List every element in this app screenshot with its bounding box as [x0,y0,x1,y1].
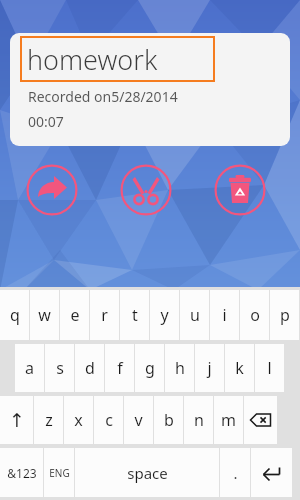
staticText: x [74,409,83,431]
button[interactable]: u [180,290,209,340]
button[interactable]: homework [20,36,215,82]
staticText: v [134,409,143,431]
button[interactable]: k [225,344,254,392]
staticText: d [85,357,95,379]
staticText: ENG [49,466,70,480]
staticText: b [164,409,174,431]
button[interactable]: Symbols [0,448,43,497]
button[interactable]: Shift [0,396,33,444]
button[interactable]: l [255,344,284,392]
staticText: t [132,304,138,326]
staticText: c [105,409,113,431]
staticText: f [117,357,123,379]
button[interactable]: homework [10,33,290,146]
button[interactable]: t [120,290,149,340]
staticText: y [160,304,169,326]
button[interactable]: r [90,290,119,340]
button[interactable]: x [64,396,93,444]
staticText: r [101,304,108,326]
button[interactable]: Language [44,448,74,497]
button[interactable]: o [240,290,269,340]
staticText: o [250,304,260,326]
staticText: w [38,304,51,326]
button[interactable]: Enter [251,448,292,497]
staticText: g [145,357,155,379]
staticText: e [70,304,80,326]
button[interactable]: Delete [214,164,266,216]
button[interactable]: e [60,290,89,340]
button[interactable]: p [270,290,299,340]
staticText: &123 [7,465,37,481]
button[interactable]: g [135,344,164,392]
button[interactable]: c [94,396,123,444]
button[interactable]: f [105,344,134,392]
staticText: u [190,304,200,326]
button[interactable]: Share [26,164,78,216]
staticText: a [25,357,34,379]
button[interactable]: b [154,396,183,444]
staticText: i [222,304,227,326]
button[interactable]: j [195,344,224,392]
staticText: space [127,463,168,483]
staticText: z [45,409,53,431]
staticText: s [56,357,64,379]
button[interactable]: w [30,290,59,340]
button[interactable]: v [124,396,153,444]
button[interactable]: s [45,344,74,392]
staticText: ↑ [9,409,25,431]
button[interactable]: Trim [120,164,172,216]
staticText: homework [27,41,158,78]
button[interactable]: a [15,344,44,392]
staticText: p [280,304,290,326]
button[interactable]: h [165,344,194,392]
button[interactable]: d [75,344,104,392]
button[interactable]: Backspace [244,396,277,444]
staticText: . [233,463,238,483]
staticText: k [235,357,244,379]
button[interactable]: i [210,290,239,340]
button[interactable]: space [75,448,219,497]
button[interactable]: z [34,396,63,444]
button[interactable]: y [150,290,179,340]
button[interactable]: n [184,396,213,444]
staticText: q [10,304,20,326]
staticText: j [207,357,212,379]
staticText: m [221,409,236,431]
staticText: Recorded on5/28/2014 [28,87,178,106]
staticText: 00:07 [28,112,64,131]
button[interactable]: q [0,290,29,340]
staticText: h [175,357,185,379]
button[interactable]: . [220,448,250,497]
button[interactable]: m [214,396,243,444]
staticText: n [194,409,204,431]
staticText: l [267,357,272,379]
